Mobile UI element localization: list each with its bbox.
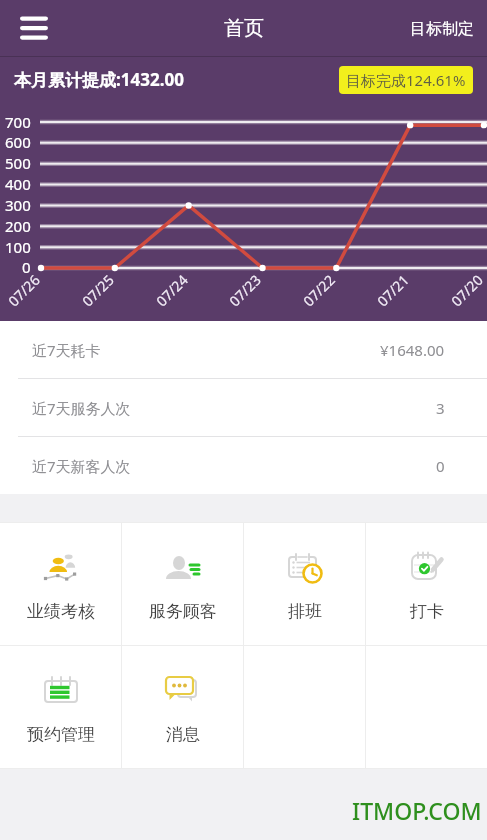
button[interactable]: 目标制定	[410, 19, 487, 39]
button[interactable]: 预约管理	[0, 646, 121, 768]
staticText: 07/23	[225, 270, 263, 308]
staticText: 目标完成124.61%	[346, 70, 466, 90]
staticText: 700	[5, 112, 31, 132]
staticText: 200	[5, 216, 31, 236]
staticText: 排班	[288, 601, 322, 622]
staticText: 近7天服务人次	[32, 398, 131, 418]
button[interactable]: 近7天新客人次	[0, 437, 487, 494]
staticText: 预约管理	[27, 724, 95, 745]
button[interactable]: 近7天服务人次	[0, 379, 487, 436]
staticText: 打卡	[410, 601, 444, 622]
staticText: 300	[5, 195, 31, 215]
staticText: 400	[5, 174, 31, 194]
staticText: 07/26	[4, 270, 42, 308]
staticText: ¥1648.00	[380, 340, 445, 360]
staticText: 07/20	[447, 270, 485, 308]
staticText: 07/25	[78, 270, 116, 308]
button[interactable]: 服务顾客	[122, 523, 243, 645]
button[interactable]: 打卡	[366, 523, 487, 645]
staticText: 0	[436, 456, 445, 476]
staticText: 07/24	[152, 270, 190, 308]
staticText: 0	[22, 257, 31, 277]
staticText: 目标制定	[410, 19, 474, 39]
button[interactable]: 近7天耗卡	[0, 321, 487, 378]
staticText: 近7天新客人次	[32, 456, 131, 476]
button[interactable]: 消息	[122, 646, 243, 768]
staticText: 业绩考核	[27, 601, 95, 622]
staticText: 07/22	[299, 270, 337, 308]
staticText: 07/21	[373, 270, 411, 308]
staticText: ITMOP.COM	[352, 795, 482, 826]
button[interactable]: 目标完成124.61%	[339, 66, 473, 94]
button[interactable]: 排班	[244, 523, 365, 645]
staticText: 3	[436, 398, 445, 418]
staticText: 本月累计提成:1432.00	[14, 68, 184, 91]
button[interactable]: 业绩考核	[0, 523, 121, 645]
staticText: 近7天耗卡	[32, 340, 101, 360]
button[interactable]	[20, 14, 48, 44]
staticText: 服务顾客	[149, 601, 217, 622]
staticText: 100	[5, 237, 31, 257]
staticText: 600	[5, 132, 31, 152]
staticText: 500	[5, 153, 31, 173]
staticText: 消息	[166, 724, 200, 745]
staticText: 首页	[224, 16, 264, 41]
